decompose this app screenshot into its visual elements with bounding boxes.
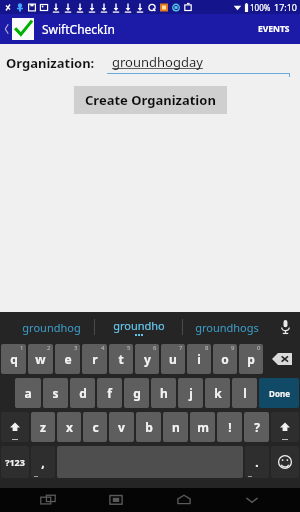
staticText: v (118, 419, 125, 435)
staticText: w (35, 351, 46, 367)
staticText: e (64, 351, 72, 367)
staticText: 4 (101, 344, 105, 352)
button[interactable]: v (109, 412, 134, 442)
button[interactable]: Voice input (270, 312, 300, 342)
staticText: m (197, 419, 209, 435)
staticText: n (172, 419, 180, 435)
button[interactable]: Screenshot (99, 489, 133, 511)
button[interactable]: o (213, 344, 237, 374)
staticText: z (40, 419, 46, 435)
button[interactable]: Recent apps (31, 489, 65, 511)
staticText: t (118, 351, 124, 367)
button[interactable]: h (151, 378, 176, 408)
button[interactable]: b (136, 412, 161, 442)
staticText: groundhogs (195, 320, 259, 335)
button[interactable]: i (187, 344, 211, 374)
staticText: Create Organization (85, 91, 216, 109)
button[interactable]: Done (259, 378, 299, 408)
button[interactable]: Emoji (271, 446, 299, 478)
staticText: ?123 (5, 456, 25, 468)
staticText: groundho (113, 318, 165, 333)
staticText: j (189, 385, 193, 401)
staticText: 0 (257, 344, 261, 352)
button[interactable]: Shift (1, 412, 29, 442)
button[interactable]: z (31, 412, 55, 442)
button[interactable]: u (161, 344, 185, 374)
staticText: f (107, 385, 112, 401)
staticText: EVENTS (258, 23, 290, 35)
staticText: 5 (127, 344, 131, 352)
staticText: h (160, 385, 168, 401)
button[interactable]: g (124, 378, 149, 408)
staticText: b (145, 419, 153, 435)
button[interactable]: x (57, 412, 81, 442)
button[interactable]: p (239, 344, 263, 374)
staticText: i (197, 351, 201, 367)
staticText: g (133, 385, 141, 401)
staticText: SwiftCheckIn (42, 21, 115, 37)
button[interactable]: f (97, 378, 122, 408)
button[interactable]: EVENTS (254, 17, 294, 41)
staticText: 100% (250, 2, 271, 13)
staticText: 9 (231, 344, 235, 352)
button[interactable]: q (1, 344, 26, 374)
staticText: 8 (205, 344, 209, 352)
button[interactable]: ? (244, 412, 269, 442)
button[interactable]: m (190, 412, 215, 442)
button[interactable]: l (232, 378, 257, 408)
staticText: r (92, 351, 98, 367)
staticText: y (144, 351, 151, 367)
button[interactable]: Backspace (265, 344, 299, 374)
staticText: d (79, 385, 87, 401)
staticText: 3 (74, 344, 78, 352)
button[interactable]: Hide keyboard (235, 489, 269, 511)
staticText: x (66, 419, 73, 435)
staticText: q (10, 351, 18, 367)
button[interactable]: ! (217, 412, 242, 442)
button[interactable]: t (109, 344, 133, 374)
button[interactable]: r (82, 344, 107, 374)
button[interactable]: groundho (95, 312, 182, 342)
staticText: 6 (153, 344, 157, 352)
staticText: 7 (179, 344, 183, 352)
staticText: Done (269, 388, 290, 399)
staticText: 2 (47, 344, 51, 352)
staticText: k (214, 385, 222, 401)
staticText: ! (228, 419, 232, 435)
staticText: Organization: (6, 54, 95, 72)
button[interactable]: ?123 (1, 446, 29, 478)
staticText: , (41, 454, 45, 470)
button[interactable]: s (43, 378, 68, 408)
staticText: s (52, 385, 59, 401)
staticText: ? (254, 419, 260, 435)
staticText: groundhogday (112, 53, 203, 71)
staticText: groundhog (22, 320, 81, 335)
staticText: u (169, 351, 177, 367)
staticText: l (243, 385, 247, 401)
button[interactable]: k (205, 378, 230, 408)
staticText: 1 (20, 344, 24, 352)
button[interactable]: Shift (271, 412, 299, 442)
button[interactable]: a (15, 378, 41, 408)
button[interactable]: groundhog (8, 312, 94, 342)
button[interactable]: d (70, 378, 95, 408)
button[interactable]: groundhogs (183, 312, 270, 342)
button[interactable]: Home (167, 489, 201, 511)
staticText: a (24, 385, 32, 401)
button[interactable]: y (135, 344, 159, 374)
staticText: . (255, 454, 259, 470)
staticText: c (92, 419, 99, 435)
staticText: o (221, 351, 229, 367)
button[interactable]: . (245, 446, 269, 478)
staticText: 17:10 (274, 1, 298, 13)
button[interactable]: , (31, 446, 55, 478)
button[interactable]: n (163, 412, 188, 442)
button[interactable]: e (55, 344, 80, 374)
button[interactable]: w (28, 344, 53, 374)
button[interactable]: c (83, 412, 107, 442)
button[interactable]: j (178, 378, 203, 408)
button[interactable]: Create Organization (74, 86, 227, 114)
staticText: p (247, 351, 255, 367)
